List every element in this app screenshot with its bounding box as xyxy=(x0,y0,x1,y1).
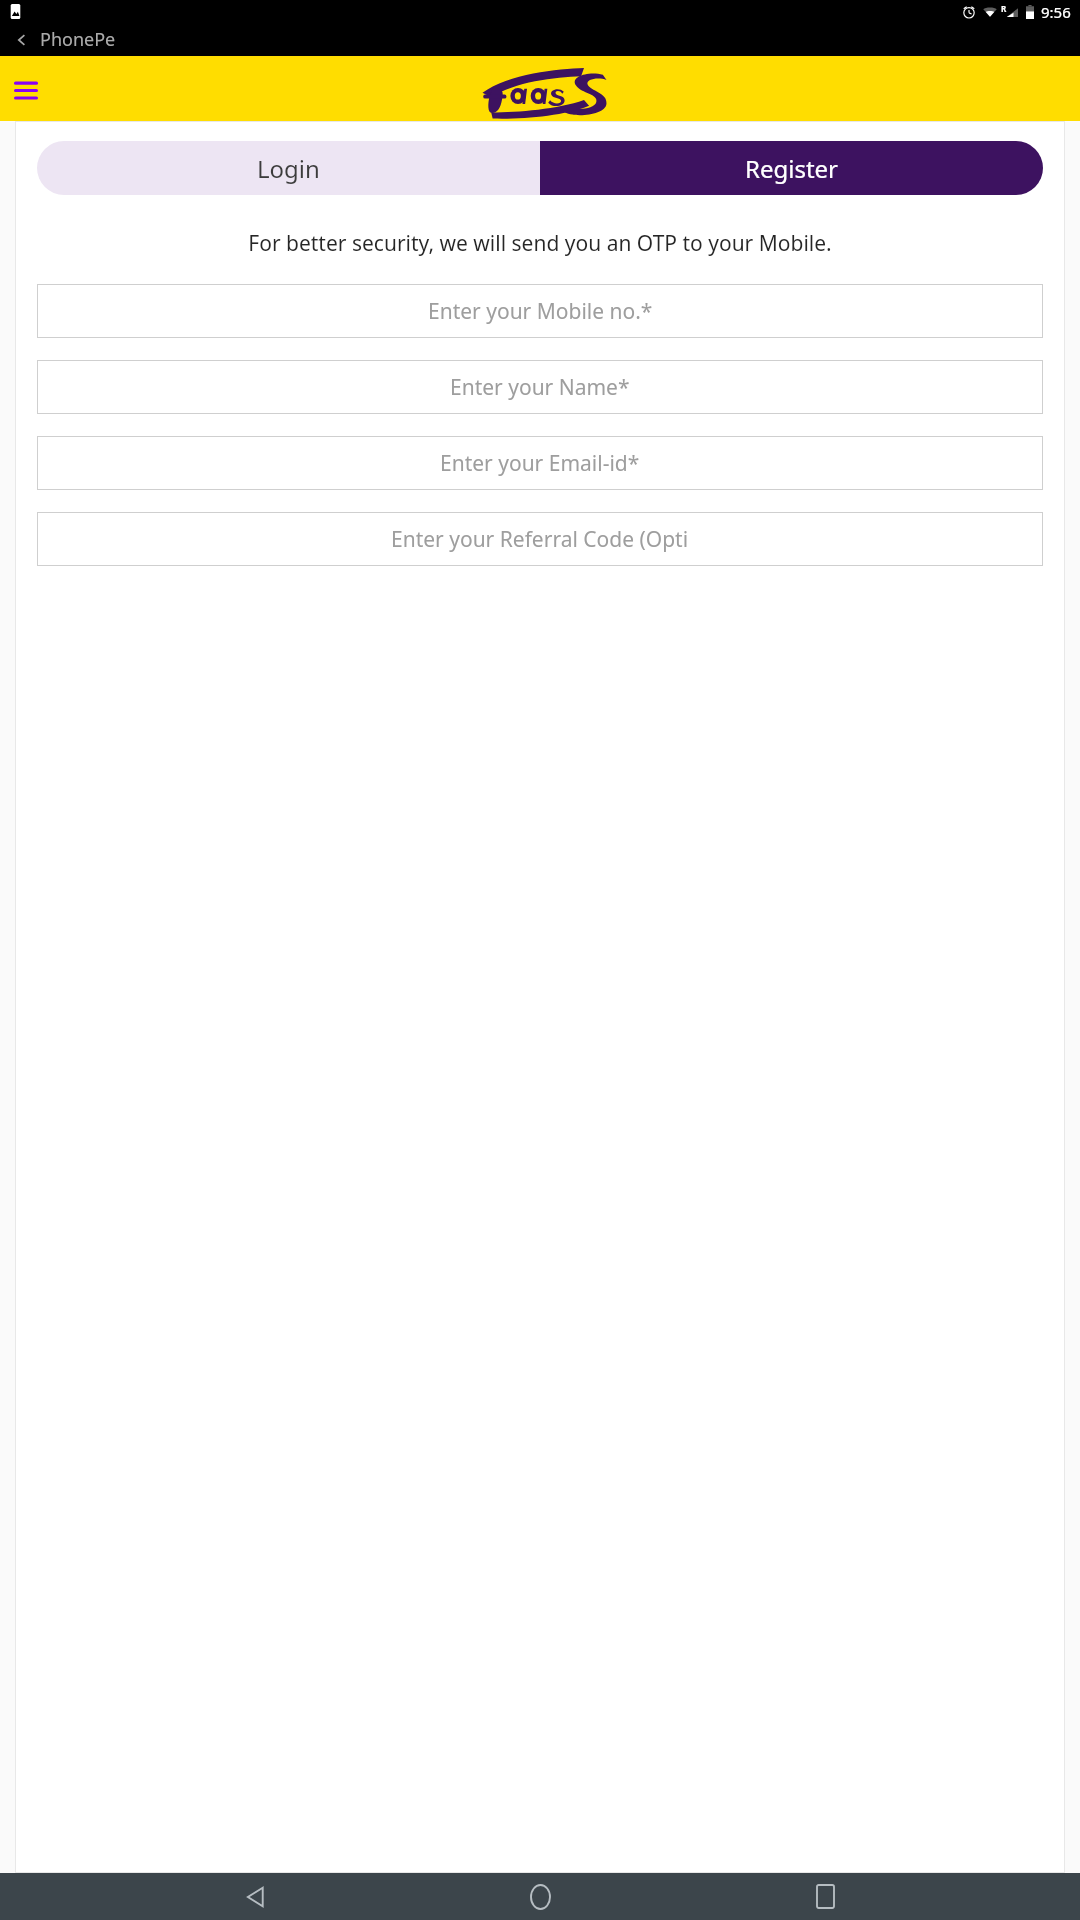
staticText: Register xyxy=(745,152,839,185)
button[interactable]: Back xyxy=(225,1873,285,1920)
button[interactable]: Menu xyxy=(9,72,43,106)
button[interactable]: Enter your Email-id* xyxy=(37,436,1043,490)
staticText: PhonePe xyxy=(40,27,116,52)
other: Back xyxy=(12,30,32,50)
button[interactable]: Register xyxy=(540,141,1043,195)
staticText: For better security, we will send you an… xyxy=(43,229,1037,258)
staticText: Enter your Name* xyxy=(450,373,630,402)
button[interactable]: Enter your Referral Code (Opti xyxy=(37,512,1043,566)
staticText: Login xyxy=(257,152,320,185)
button[interactable]: Enter your Mobile no.* xyxy=(37,284,1043,338)
button[interactable]: Login xyxy=(37,141,540,195)
staticText: Enter your Referral Code (Opti xyxy=(391,525,689,554)
staticText: 9:56 xyxy=(1041,2,1071,22)
button[interactable]: Enter your Name* xyxy=(37,360,1043,414)
staticText: Enter your Email-id* xyxy=(440,449,640,478)
staticText: R xyxy=(1001,3,1007,14)
button[interactable]: Home xyxy=(510,1873,570,1920)
button[interactable]: Back xyxy=(0,23,1080,56)
staticText: Enter your Mobile no.* xyxy=(428,297,653,326)
button[interactable]: Recent apps xyxy=(795,1873,855,1920)
